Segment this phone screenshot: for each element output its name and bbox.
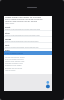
button[interactable] <box>4 25 52 31</box>
button[interactable] <box>4 37 52 43</box>
staticText: https://fonts.example.com/roboto400 <box>5 46 39 49</box>
button[interactable] <box>4 31 52 37</box>
staticText: Learn more <box>5 69 16 72</box>
staticText: Style <box>5 32 10 35</box>
staticText: Tested a few minutes ago by Google <box>5 20 38 23</box>
staticText: Some resources could <box>5 56 25 59</box>
button[interactable]: Account <box>44 79 52 87</box>
staticText: Learn more <box>5 22 15 24</box>
button[interactable]: Page loading issues <box>4 51 52 55</box>
staticText: These may affect how <box>5 60 25 63</box>
staticText: Google renders and <box>5 62 23 65</box>
staticText: https://cdn.example.com/css/main.min <box>5 34 40 37</box>
staticText: https://cdn.example.com/js/app.bundle <box>5 28 41 31</box>
staticText: Script <box>5 26 11 29</box>
staticText: https://www.example.com/products/index <box>5 18 43 21</box>
staticText: Image <box>5 38 12 41</box>
staticText: Page <box>5 49 10 52</box>
staticText: not be loaded by bot. <box>5 58 24 61</box>
button[interactable] <box>4 42 52 48</box>
staticText: Review the list now. <box>5 67 23 70</box>
staticText: Page loading issues <box>5 52 23 55</box>
staticText: https://img.example.com/assets/hero <box>5 40 39 43</box>
button[interactable] <box>4 48 52 54</box>
staticText: Font <box>5 44 10 47</box>
staticText: indexes your page. <box>5 64 22 67</box>
staticText: Mobile-friendly test results for the pag… <box>5 16 41 19</box>
